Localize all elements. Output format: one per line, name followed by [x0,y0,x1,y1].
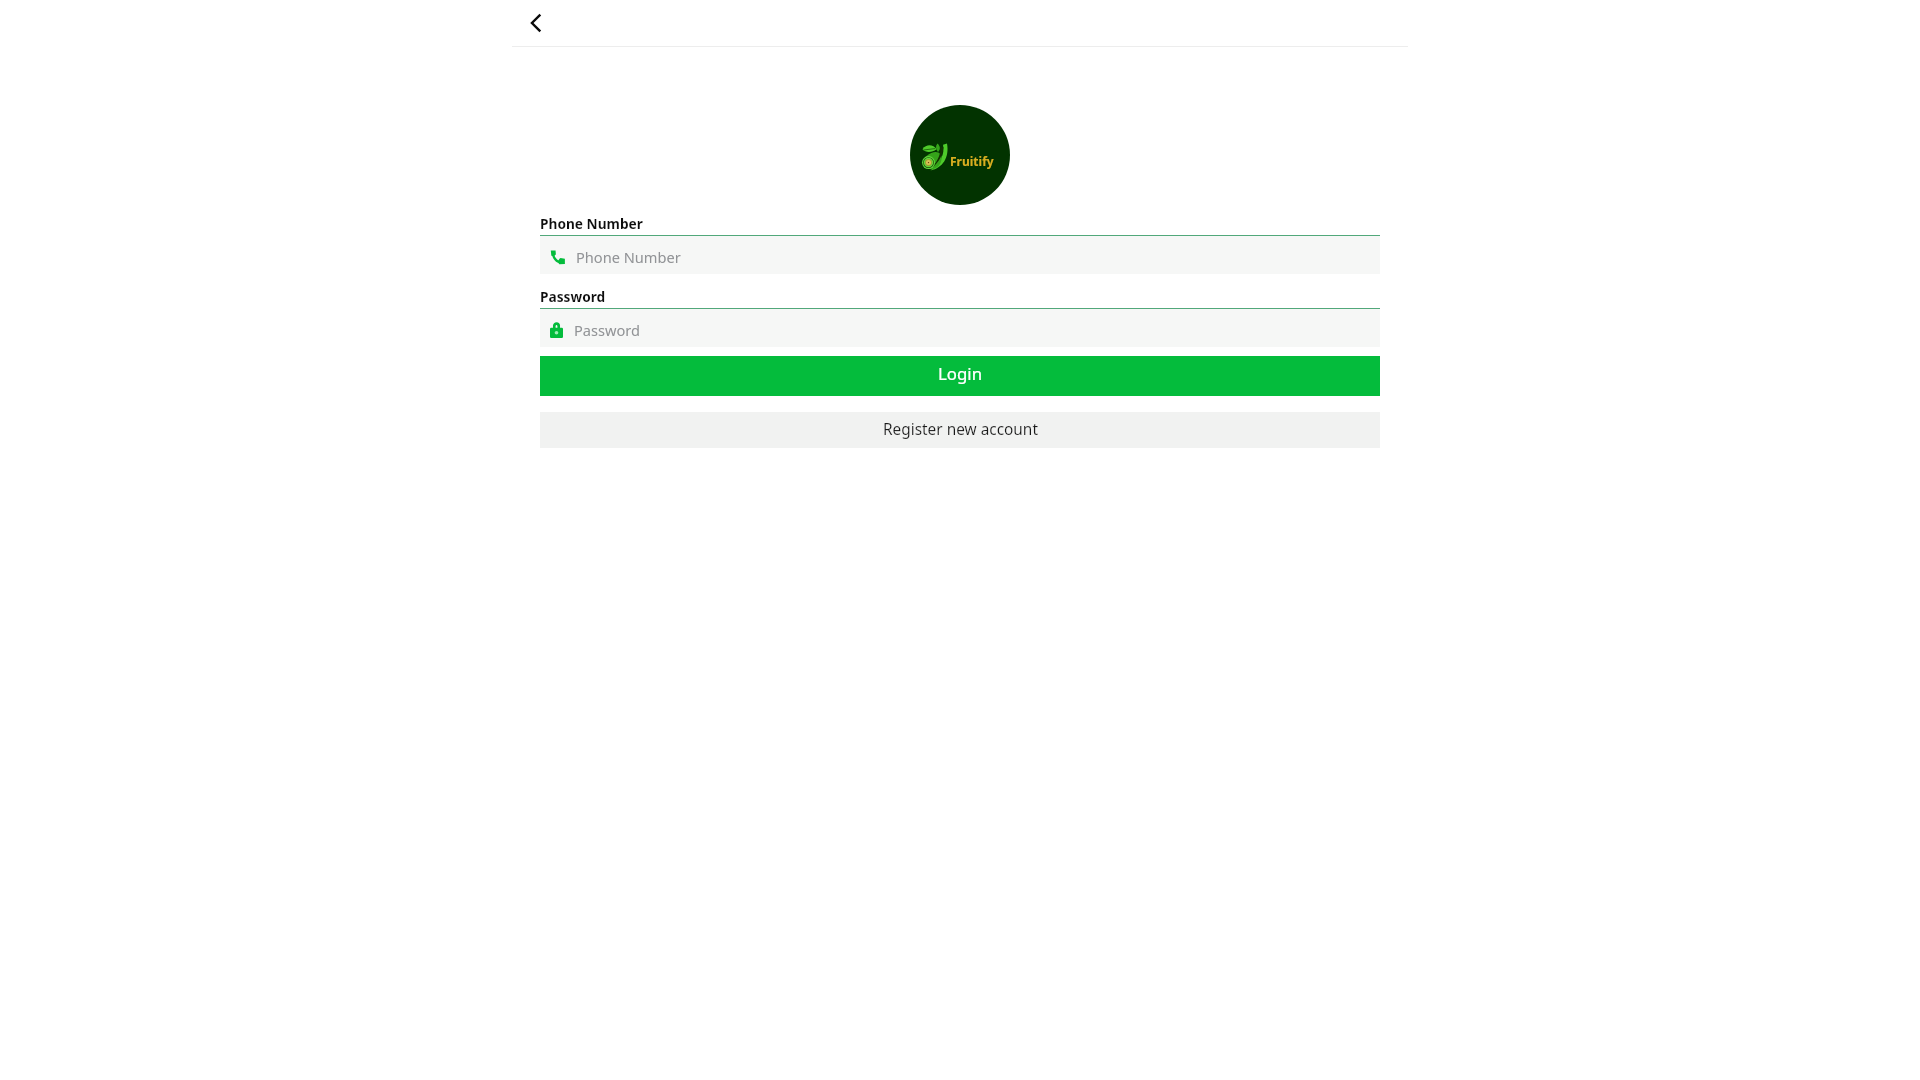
button[interactable]: Login [540,356,1380,396]
button[interactable]: Back [513,1,559,45]
staticText: Register new account [883,419,1038,440]
button[interactable]: Password [540,309,1380,347]
staticText: Login [938,362,983,385]
button[interactable]: Register new account [540,412,1380,448]
staticText: Password [540,287,606,306]
staticText: Fruitify [950,153,994,169]
staticText: Phone Number [540,214,643,233]
staticText: Password [574,320,641,340]
button[interactable]: Phone Number [540,236,1380,274]
staticText: Phone Number [576,247,681,267]
